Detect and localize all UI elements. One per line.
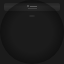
button[interactable]: Open (29, 15, 35, 17)
button[interactable]: App icon (4, 3, 60, 11)
